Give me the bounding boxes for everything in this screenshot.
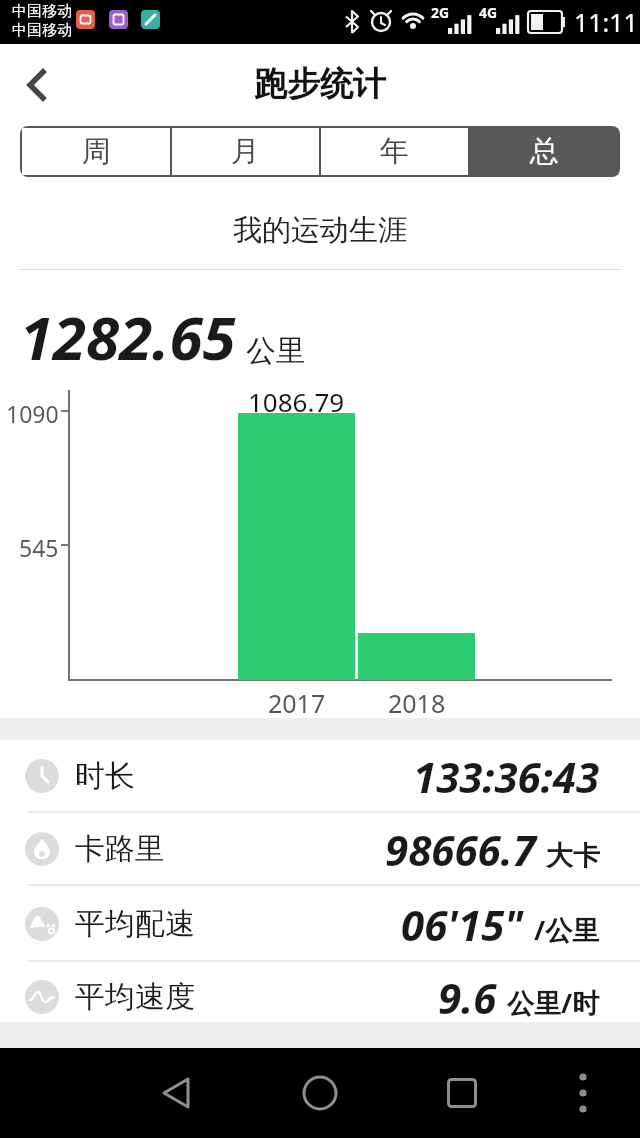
staticText: 06'15" — [401, 896, 524, 953]
button[interactable]: 平均速度 — [0, 962, 640, 1032]
staticText: 545 — [19, 532, 59, 563]
button[interactable]: 总 — [470, 128, 618, 175]
button[interactable] — [0, 44, 76, 124]
staticText: 周 — [82, 133, 111, 170]
button[interactable]: 卡路里 — [0, 812, 640, 886]
button[interactable] — [555, 1065, 611, 1121]
staticText: 1282.65 — [20, 296, 236, 378]
staticText: 大卡 — [546, 839, 600, 873]
staticText: /公里 — [534, 911, 600, 948]
staticText: 平均速度 — [75, 978, 195, 1016]
staticText: 卡路里 — [75, 830, 165, 868]
button[interactable]: 月 — [172, 128, 319, 175]
staticText: 中国移动 — [12, 21, 72, 40]
staticText: 9.6 — [438, 969, 497, 1026]
staticText: 1086.79 — [248, 384, 345, 419]
staticText: 98666.7 — [385, 821, 536, 878]
staticText: 11:11 — [574, 5, 638, 39]
button[interactable]: 年 — [321, 128, 468, 175]
button[interactable]: 平均配速 — [0, 886, 640, 962]
staticText: 时长 — [75, 757, 135, 795]
button[interactable] — [282, 1065, 358, 1121]
button[interactable] — [424, 1065, 500, 1121]
staticText: 公里 — [246, 332, 306, 370]
staticText: 跑步统计 — [254, 63, 386, 105]
button[interactable]: 时长 — [0, 740, 640, 812]
button[interactable] — [140, 1065, 216, 1121]
staticText: 年 — [380, 133, 409, 170]
staticText: 公里/时 — [507, 984, 600, 1021]
staticText: 中国移动 — [12, 2, 72, 21]
staticText: 1090 — [6, 398, 59, 429]
staticText: 总 — [530, 133, 559, 170]
staticText: 133:36:43 — [413, 748, 600, 805]
staticText: 月 — [231, 133, 260, 170]
staticText: 4G — [479, 3, 498, 22]
staticText: 平均配速 — [75, 905, 195, 943]
staticText: 2018 — [388, 686, 446, 720]
staticText: 我的运动生涯 — [233, 212, 407, 249]
button[interactable]: 周 — [22, 128, 170, 175]
staticText: 2017 — [268, 686, 326, 720]
staticText: 2G — [431, 3, 450, 22]
